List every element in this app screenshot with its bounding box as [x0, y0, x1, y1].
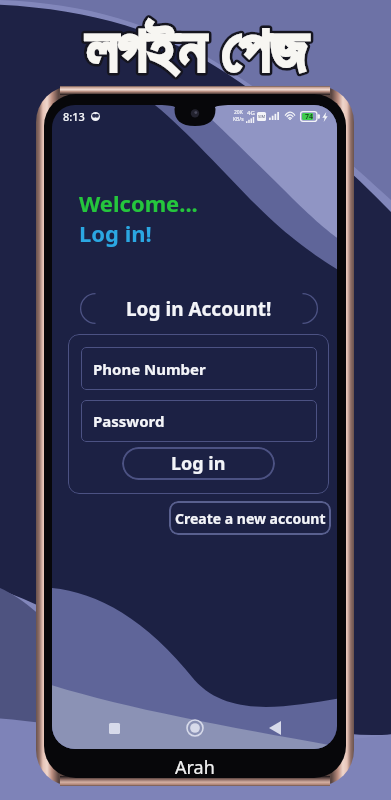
- staticText: 4G: [247, 109, 255, 117]
- button[interactable]: Log in Account!: [80, 293, 318, 324]
- button[interactable]: Recents: [96, 710, 132, 746]
- button[interactable]: Phone Number: [81, 347, 317, 390]
- staticText: Phone Number: [93, 359, 206, 379]
- staticText: লগইন পেজ: [85, 6, 307, 90]
- staticText: 8:13: [63, 109, 85, 124]
- staticText: Arah: [175, 755, 215, 780]
- staticText: Create a new account: [175, 509, 326, 528]
- staticText: Welcome...: [79, 188, 198, 218]
- button[interactable]: Password: [81, 400, 317, 442]
- staticText: Log in!: [79, 218, 152, 248]
- staticText: SIM: [258, 114, 266, 119]
- staticText: 20K: [234, 109, 243, 116]
- staticText: Log in Account!: [126, 296, 272, 322]
- staticText: Password: [93, 411, 165, 431]
- staticText: KB/s: [233, 116, 244, 123]
- button[interactable]: Back: [257, 710, 293, 746]
- button[interactable]: Home: [177, 710, 213, 746]
- staticText: Log in: [171, 451, 226, 476]
- button[interactable]: Create a new account: [169, 501, 331, 535]
- staticText: 74: [305, 112, 314, 122]
- staticText: লগইন পেজ: [85, 6, 307, 90]
- button[interactable]: Log in: [122, 447, 275, 480]
